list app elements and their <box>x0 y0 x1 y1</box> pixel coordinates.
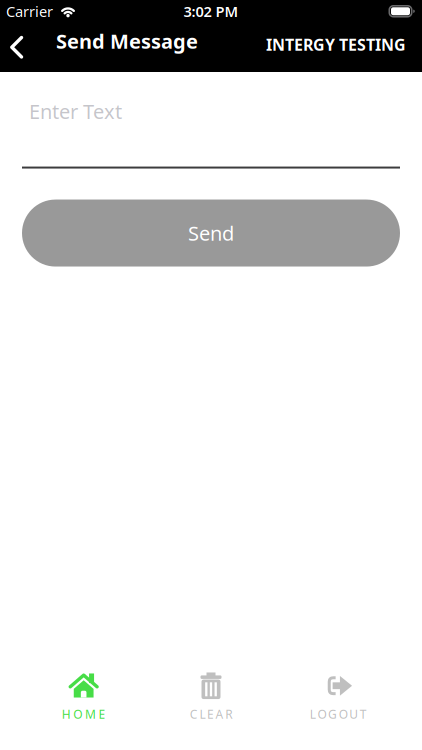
button[interactable]: Send <box>22 200 400 267</box>
button[interactable]: LOGOUT <box>275 672 402 722</box>
staticText: Enter Text <box>29 98 122 125</box>
staticText: LOGOUT <box>310 706 367 722</box>
staticText: Carrier <box>6 1 53 21</box>
staticText: CLEAR <box>190 706 232 722</box>
staticText: HOME <box>62 706 106 722</box>
staticText: Send Message <box>56 28 198 54</box>
staticText: 3:02 PM <box>183 1 238 21</box>
button[interactable]: CLEAR <box>147 672 275 722</box>
button[interactable]: HOME <box>20 672 147 722</box>
staticText: INTERGY TESTING <box>266 34 406 55</box>
staticText: Send <box>188 220 234 246</box>
button[interactable]: Enter Text <box>0 72 422 169</box>
button[interactable]: Back <box>0 36 56 59</box>
